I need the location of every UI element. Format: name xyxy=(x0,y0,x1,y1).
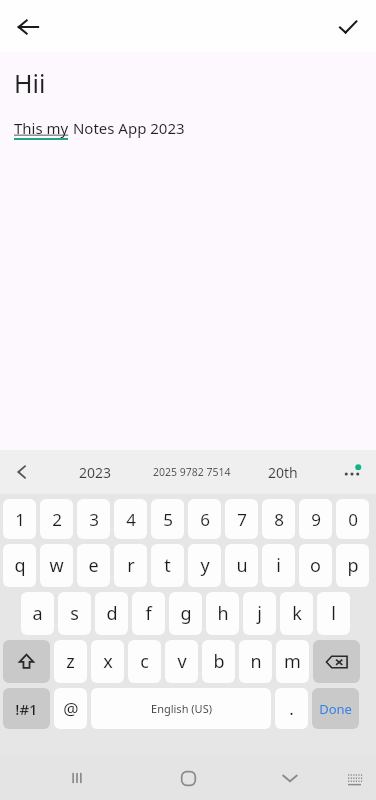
staticText: m xyxy=(284,649,301,674)
staticText: 9 xyxy=(311,508,321,531)
staticText: 1 xyxy=(15,508,25,531)
button[interactable]: d xyxy=(95,592,128,635)
button[interactable]: h xyxy=(206,592,239,635)
button[interactable]: This my xyxy=(14,118,185,138)
button[interactable]: 2025 9782 7514 xyxy=(140,450,244,494)
staticText: s xyxy=(70,601,79,626)
staticText: Done xyxy=(319,700,352,718)
button[interactable]: t xyxy=(151,544,184,587)
staticText: 20th xyxy=(268,463,298,482)
button[interactable]: m xyxy=(276,640,309,683)
staticText: x xyxy=(103,649,113,674)
button[interactable]: 3 xyxy=(77,499,110,539)
button[interactable]: 9 xyxy=(299,499,332,539)
staticText: 6 xyxy=(200,508,210,531)
button[interactable]: Backspace xyxy=(313,640,360,683)
button[interactable]: Save note xyxy=(330,9,366,45)
button[interactable]: e xyxy=(77,544,110,587)
staticText: w xyxy=(49,553,64,578)
button[interactable]: 5 xyxy=(151,499,184,539)
button[interactable]: Change keyboard xyxy=(339,763,369,793)
staticText: 5 xyxy=(163,508,173,531)
button[interactable]: !#1 xyxy=(3,688,50,729)
button[interactable]: 6 xyxy=(188,499,221,539)
staticText: a xyxy=(32,601,43,626)
button[interactable]: 0 xyxy=(336,499,369,539)
button[interactable]: w xyxy=(40,544,73,587)
button[interactable]: j xyxy=(243,592,276,635)
button[interactable]: f xyxy=(132,592,165,635)
staticText: b xyxy=(213,649,225,674)
staticText: h xyxy=(217,601,229,626)
button[interactable]: k xyxy=(280,592,313,635)
button[interactable]: g xyxy=(169,592,202,635)
staticText: o xyxy=(310,553,321,578)
staticText: 0 xyxy=(348,508,358,531)
button[interactable]: c xyxy=(128,640,161,683)
button[interactable]: Back xyxy=(10,9,46,45)
staticText: j xyxy=(257,601,262,626)
staticText: 7 xyxy=(237,508,247,531)
staticText: p xyxy=(347,553,359,578)
button[interactable]: b xyxy=(202,640,235,683)
staticText: z xyxy=(66,649,75,674)
staticText: i xyxy=(276,553,281,578)
button[interactable]: Hide keyboard xyxy=(275,763,305,793)
staticText: c xyxy=(140,649,149,674)
staticText: g xyxy=(180,601,192,626)
button[interactable]: a xyxy=(21,592,54,635)
button[interactable]: n xyxy=(239,640,272,683)
button[interactable]: y xyxy=(188,544,221,587)
button[interactable]: u xyxy=(225,544,258,587)
button[interactable]: z xyxy=(54,640,87,683)
button[interactable]: 20th xyxy=(252,450,314,494)
staticText: q xyxy=(14,553,26,578)
button[interactable]: Shift xyxy=(3,640,50,683)
staticText: 2025 9782 7514 xyxy=(153,465,231,479)
staticText: 3 xyxy=(89,508,99,531)
staticText: @ xyxy=(63,697,79,720)
staticText: 4 xyxy=(126,508,136,531)
button[interactable]: @ xyxy=(54,688,87,729)
button[interactable]: i xyxy=(262,544,295,587)
staticText: !#1 xyxy=(15,699,38,719)
staticText: n xyxy=(250,649,262,674)
button[interactable]: More keyboard options xyxy=(338,458,366,486)
staticText: y xyxy=(200,553,210,578)
button[interactable]: v xyxy=(165,640,198,683)
staticText: English (US) xyxy=(151,701,212,716)
staticText: Notes App 2023 xyxy=(69,118,185,138)
staticText: e xyxy=(88,553,99,578)
staticText: v xyxy=(177,649,187,674)
staticText: t xyxy=(164,553,171,578)
staticText: u xyxy=(236,553,248,578)
button[interactable]: q xyxy=(3,544,36,587)
button[interactable]: . xyxy=(275,688,308,729)
button[interactable]: 2 xyxy=(40,499,73,539)
button[interactable]: Hii xyxy=(14,66,46,100)
button[interactable]: 2023 xyxy=(62,450,128,494)
button[interactable]: s xyxy=(58,592,91,635)
staticText: 8 xyxy=(274,508,284,531)
button[interactable]: p xyxy=(336,544,369,587)
button[interactable]: 4 xyxy=(114,499,147,539)
button[interactable]: Done xyxy=(312,688,359,729)
button[interactable]: r xyxy=(114,544,147,587)
staticText: d xyxy=(106,601,118,626)
button[interactable]: 7 xyxy=(225,499,258,539)
button[interactable]: o xyxy=(299,544,332,587)
staticText: This my xyxy=(14,118,69,138)
button[interactable]: English (US) xyxy=(91,688,271,729)
staticText: l xyxy=(331,601,336,626)
button[interactable]: Home xyxy=(173,763,203,793)
staticText: 2023 xyxy=(79,463,112,482)
staticText: . xyxy=(289,697,294,720)
button[interactable]: l xyxy=(317,592,350,635)
staticText: k xyxy=(292,601,302,626)
button[interactable]: Recent apps xyxy=(62,763,92,793)
button[interactable]: x xyxy=(91,640,124,683)
button[interactable]: 1 xyxy=(3,499,36,539)
button[interactable]: Previous suggestions xyxy=(8,458,36,486)
staticText: 2 xyxy=(52,508,62,531)
button[interactable]: 8 xyxy=(262,499,295,539)
